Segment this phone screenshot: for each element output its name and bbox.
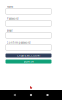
staticText: CREATE ACCOUNT bbox=[17, 54, 40, 57]
button[interactable]: Home bbox=[23, 90, 39, 99]
button[interactable]: Back bbox=[6, 90, 23, 99]
staticText: Password bbox=[7, 17, 19, 20]
staticText: Confirm password bbox=[7, 41, 31, 44]
button[interactable]: CREATE ACCOUNT bbox=[5, 53, 51, 57]
staticText: SIGN IN bbox=[23, 60, 33, 63]
button[interactable]: Recent apps bbox=[39, 90, 56, 99]
staticText: Name bbox=[7, 5, 14, 8]
button[interactable]: SIGN IN bbox=[5, 59, 51, 63]
staticText: Email bbox=[7, 29, 13, 32]
